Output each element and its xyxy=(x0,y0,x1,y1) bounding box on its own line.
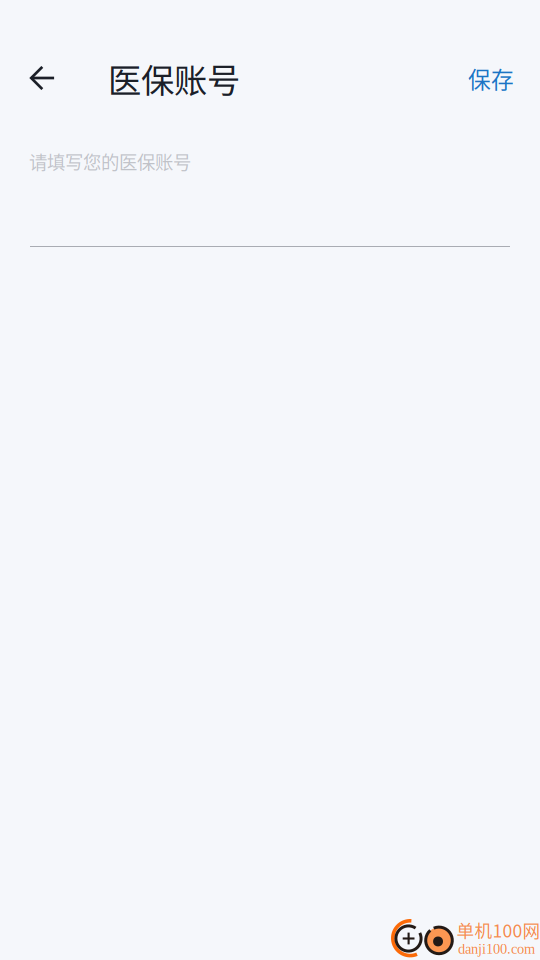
textField[interactable]: 请填写您的医保账号 xyxy=(29,142,511,247)
button[interactable]: 保存 xyxy=(448,44,534,113)
staticText: 医保账号 xyxy=(108,54,240,102)
staticText: 保存 xyxy=(468,62,514,95)
button[interactable]: Back xyxy=(16,52,69,104)
staticText: danji100.com xyxy=(458,941,535,957)
staticText: 请填写您的医保账号 xyxy=(29,148,191,175)
staticText: 单机100网 xyxy=(456,917,540,942)
